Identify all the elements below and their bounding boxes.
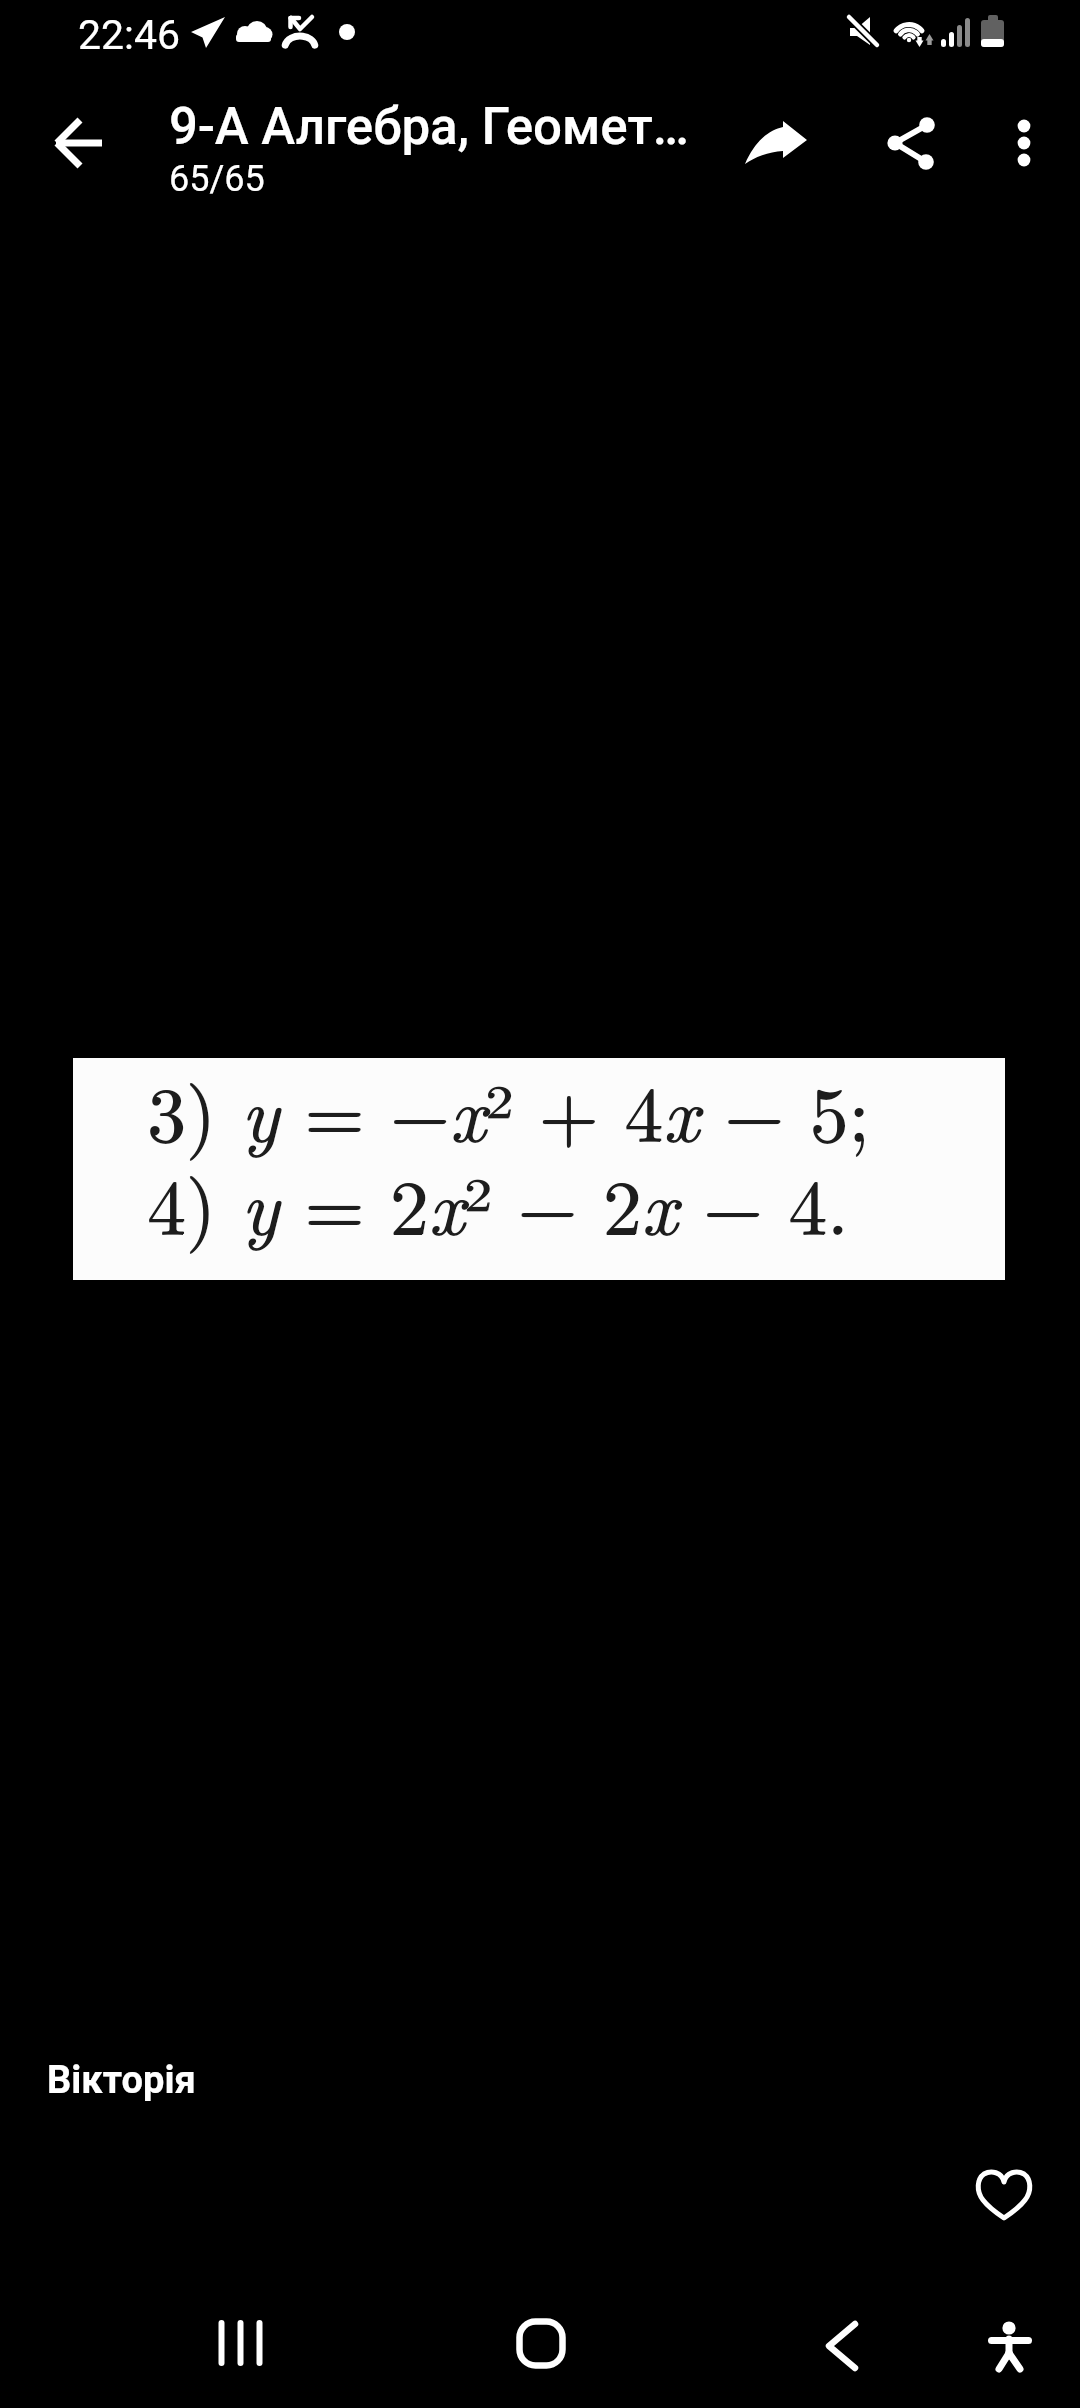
staticText: 4) y = 2x² − 2x − 4. — [148, 1147, 850, 1256]
staticText: Вікторія — [47, 2058, 196, 2103]
button[interactable]: More options — [976, 95, 1072, 191]
button[interactable]: Like — [956, 2146, 1052, 2242]
staticText: 9-А Алгебра, Геомет… — [169, 96, 689, 157]
button[interactable]: Share — [880, 95, 976, 191]
staticText: 3) y = −x² + 4x − 5; — [147, 1055, 870, 1164]
staticText: 3) y = −x² + 4x − 5; — [148, 1054, 871, 1163]
button[interactable]: Home — [490, 2300, 590, 2400]
staticText: 65/65 — [169, 158, 265, 200]
staticText: 4) y = 2x² − 2x − 4. — [147, 1148, 849, 1257]
button[interactable]: Accessibility — [960, 2300, 1060, 2400]
staticText: 3) y = −x² + 4x − 5; — [147, 1054, 870, 1163]
staticText: 22:46 — [78, 11, 181, 59]
button[interactable]: Back — [31, 95, 127, 191]
button[interactable]: Back — [790, 2300, 890, 2400]
button[interactable]: Forward — [735, 99, 831, 195]
button[interactable]: 3) y = −x² + 4x − 5; — [73, 1058, 1005, 1280]
button[interactable]: Recent apps — [188, 2300, 288, 2400]
staticText: 4) y = 2x² − 2x − 4. — [147, 1147, 849, 1256]
